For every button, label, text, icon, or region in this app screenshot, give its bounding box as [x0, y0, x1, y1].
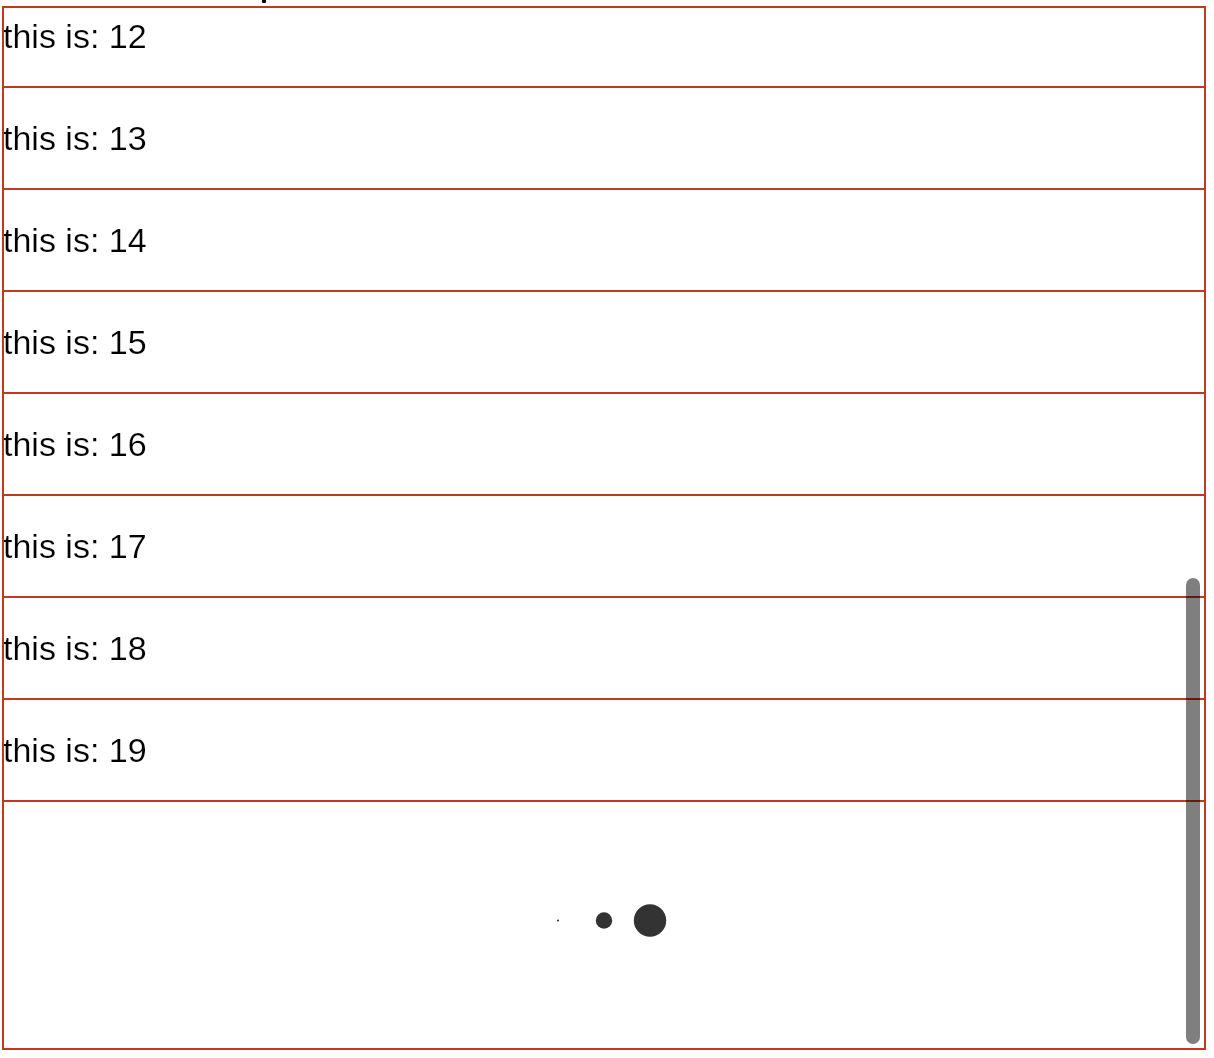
staticText: this is: 16 — [3, 425, 147, 463]
button[interactable]: this is: 16 — [2, 392, 1206, 496]
button[interactable]: this is: 18 — [2, 596, 1206, 700]
button[interactable]: this is: 14 — [2, 188, 1206, 292]
button[interactable]: this is: 17 — [2, 494, 1206, 598]
staticText: this is: 19 — [3, 731, 147, 769]
other: Loading more items — [2, 800, 1206, 1050]
staticText: this is: 13 — [3, 119, 147, 157]
button[interactable]: this is: 12 — [2, 6, 1206, 88]
button[interactable]: this is: 13 — [2, 86, 1206, 190]
staticText: this is: 18 — [3, 629, 147, 667]
staticText: this is: 17 — [3, 527, 147, 565]
staticText: this is: 14 — [3, 221, 147, 259]
button[interactable]: this is: 15 — [2, 290, 1206, 394]
staticText: this is: 15 — [3, 323, 147, 361]
button[interactable]: this is: 19 — [2, 698, 1206, 802]
staticText: this is: 12 — [3, 17, 147, 55]
